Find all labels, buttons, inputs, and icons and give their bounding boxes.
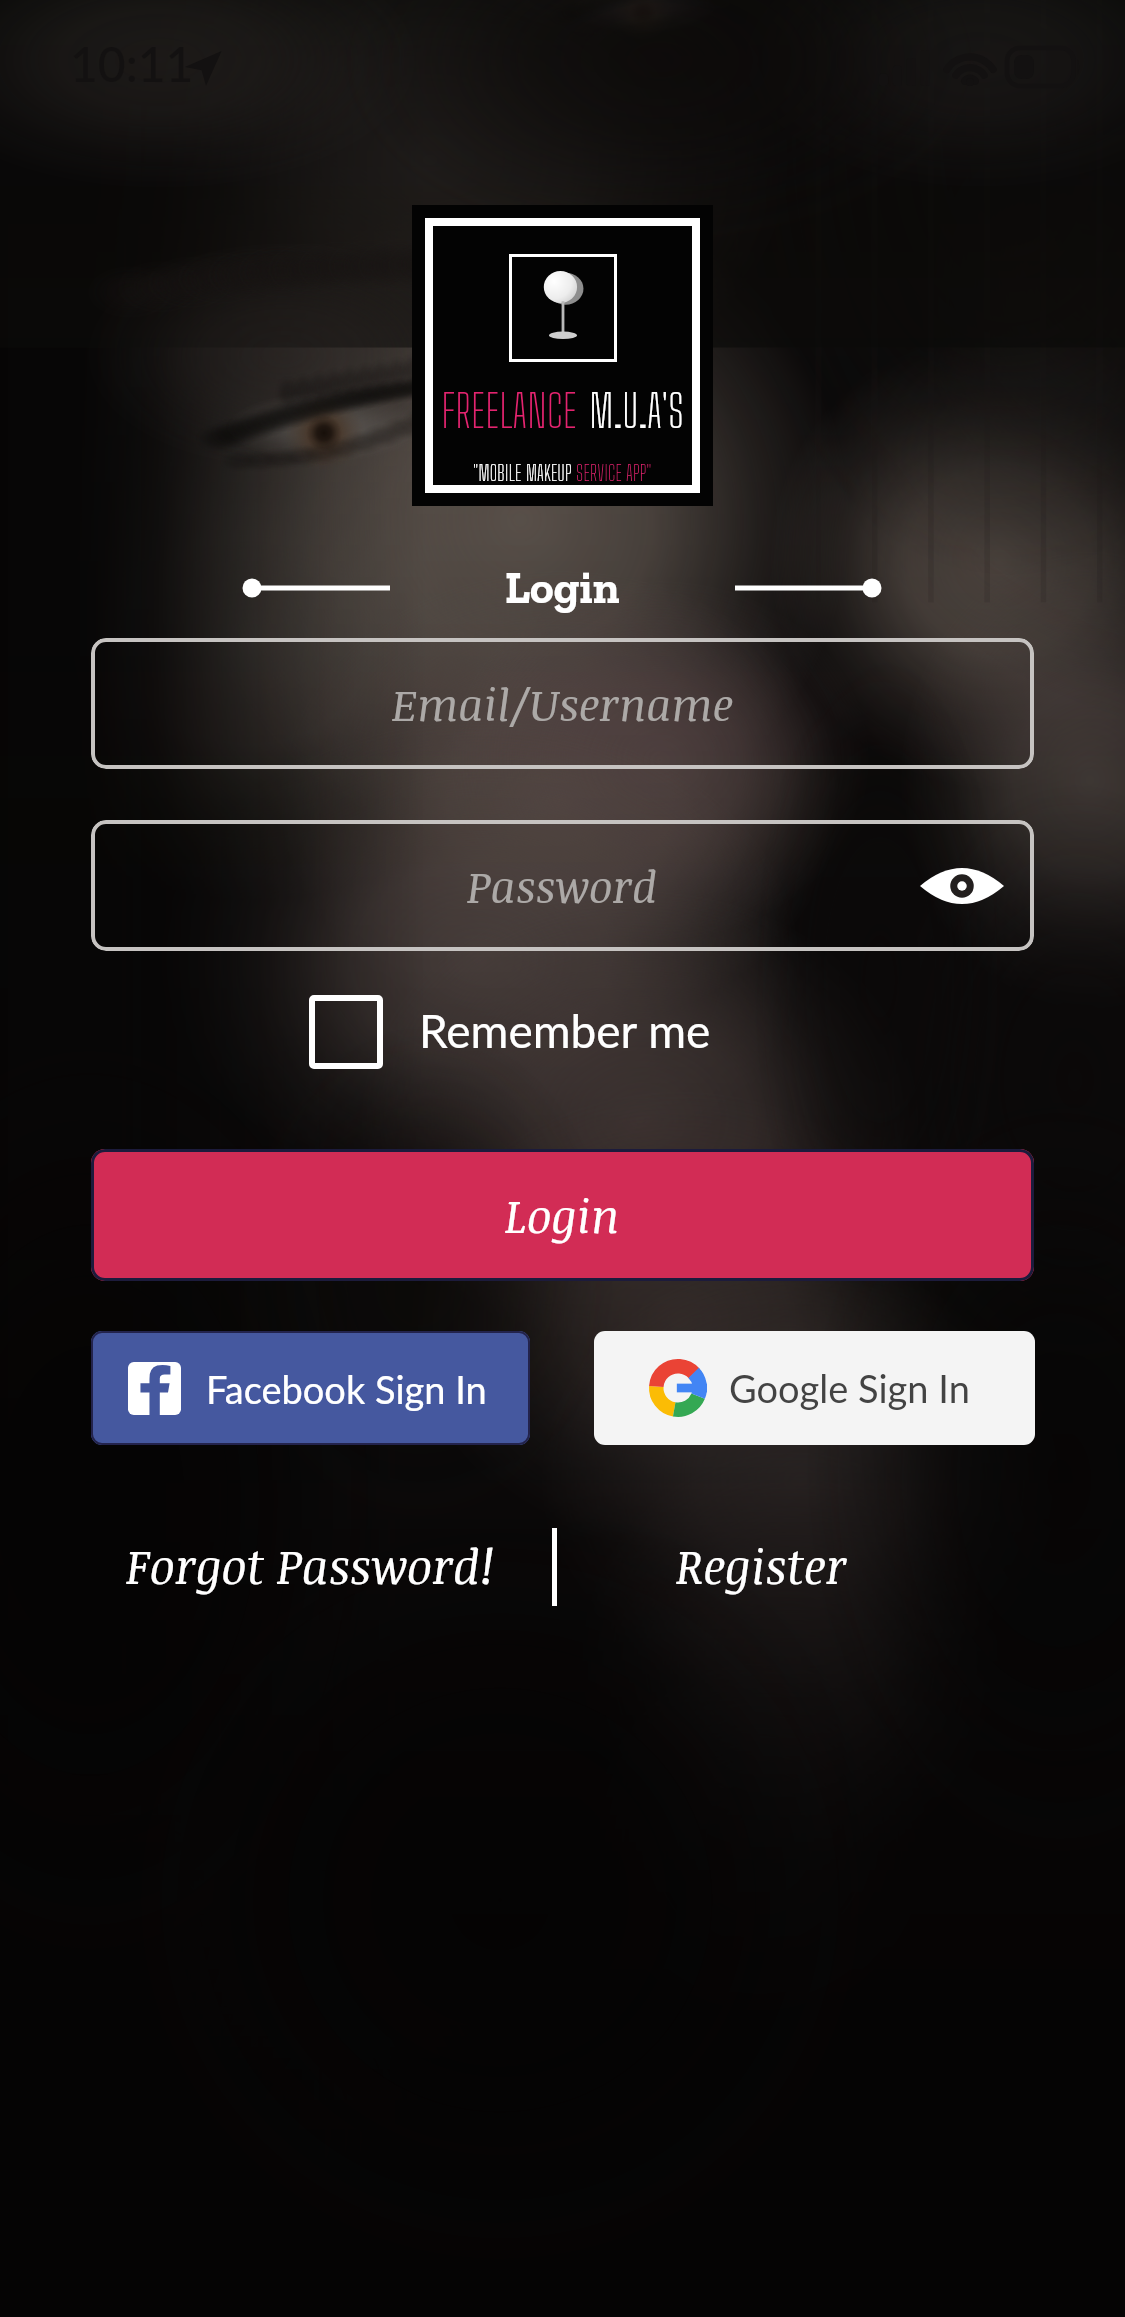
staticText: FREELANCE (441, 384, 577, 438)
staticText: SERVICE APP" (576, 460, 652, 485)
button[interactable]: Facebook Sign In (91, 1331, 530, 1445)
staticText: Login (505, 1184, 620, 1247)
staticText: Forgot Password! (126, 1533, 495, 1597)
button[interactable]: Forgot Password! (126, 1525, 496, 1605)
staticText: Register (676, 1533, 847, 1597)
staticText: Google Sign In (729, 1365, 970, 1411)
button[interactable]: Register (676, 1525, 866, 1605)
button[interactable]: Password (91, 820, 1034, 951)
staticText: Email/Username (392, 674, 733, 734)
button[interactable]: Remember me (309, 986, 759, 1074)
staticText: Remember me (419, 1003, 711, 1058)
staticText: M.U.A'S (589, 384, 684, 438)
button[interactable]: Email/Username (91, 638, 1034, 769)
button[interactable]: Google Sign In (594, 1331, 1035, 1445)
staticText: "MOBILE MAKEUP (473, 460, 576, 485)
button[interactable]: Show password (910, 838, 1014, 934)
staticText: Password (467, 856, 658, 916)
button[interactable]: Login (91, 1149, 1034, 1281)
staticText: Login (505, 561, 620, 615)
staticText: Facebook Sign In (206, 1366, 487, 1412)
